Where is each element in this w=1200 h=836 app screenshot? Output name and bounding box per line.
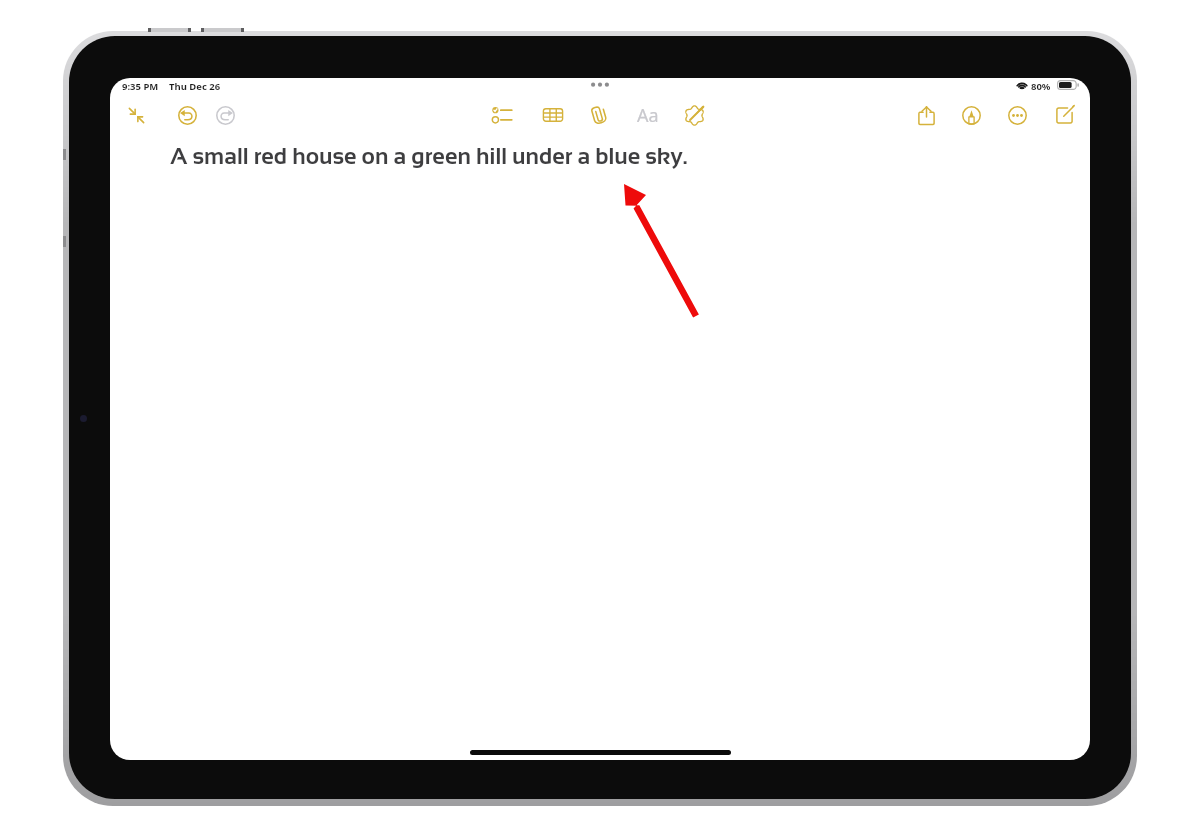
button[interactable]: More options bbox=[1000, 98, 1034, 132]
staticText: A small red house on a green hill under … bbox=[170, 143, 688, 169]
button[interactable]: Attach file bbox=[582, 98, 616, 132]
staticText: 9:35 PM bbox=[122, 80, 159, 93]
button[interactable]: Undo bbox=[170, 98, 204, 132]
staticText: Thu Dec 26 bbox=[169, 80, 221, 93]
button[interactable]: Text format bbox=[631, 98, 665, 132]
button[interactable]: Redo bbox=[208, 98, 242, 132]
button[interactable]: Share bbox=[909, 98, 943, 132]
button[interactable]: New note bbox=[1047, 98, 1081, 132]
button[interactable]: Table bbox=[536, 98, 570, 132]
button[interactable]: Checklist bbox=[485, 98, 519, 132]
staticText: Aa bbox=[637, 103, 659, 128]
button[interactable]: Apple Intelligence bbox=[677, 98, 711, 132]
button[interactable]: Collapse bbox=[119, 98, 153, 132]
button[interactable]: Markup bbox=[954, 98, 988, 132]
staticText: 80% bbox=[1031, 80, 1051, 93]
